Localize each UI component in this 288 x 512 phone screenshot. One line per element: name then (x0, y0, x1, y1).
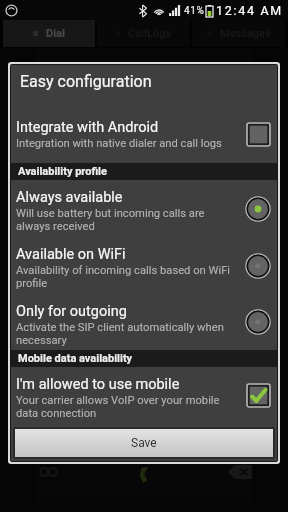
staticText: I'm allowed to use mobile (16, 376, 180, 393)
button[interactable]: 7 (0, 272, 96, 349)
staticText: Will use battery but incoming calls are … (16, 207, 241, 233)
button[interactable]: 5 (96, 195, 192, 272)
staticText: 2 (128, 143, 142, 171)
other: Not selected (245, 309, 271, 335)
button[interactable]: Backspace (192, 464, 288, 498)
button[interactable]: Only for outgoing (11, 294, 277, 350)
staticText: Mobile data availability (18, 352, 133, 365)
button[interactable]: 9 (192, 272, 288, 349)
other: Checked (246, 383, 271, 408)
staticText: PQRS (46, 312, 67, 321)
button[interactable]: * (0, 349, 96, 426)
staticText: ABC (145, 158, 161, 167)
other: Selected (245, 196, 271, 222)
staticText: 3 (224, 143, 238, 171)
staticText: 4 (33, 220, 47, 248)
staticText: Availability of incoming calls based on … (16, 264, 241, 290)
staticText: DEF (241, 158, 256, 167)
staticText: Easy configuration (20, 72, 152, 91)
button[interactable]: Call (96, 464, 192, 498)
button[interactable]: 3 (192, 118, 288, 195)
other: Not selected (245, 253, 271, 279)
staticText: 0 (133, 374, 147, 402)
staticText: Only for outgoing (16, 303, 127, 320)
staticText: Save (131, 436, 157, 450)
button[interactable]: Always available (11, 180, 277, 237)
button[interactable]: I'm allowed to use mobile (11, 367, 277, 424)
button[interactable]: 6 (192, 195, 288, 272)
staticText: Integration with native dialer and call … (16, 137, 222, 150)
staticText: 1 (41, 143, 55, 171)
staticText: Dial (46, 27, 65, 40)
staticText: 41% (184, 5, 205, 17)
button[interactable]: 0 (96, 349, 192, 426)
staticText: CallLogs (128, 27, 172, 40)
button[interactable]: Save (15, 429, 273, 457)
button[interactable]: Messages (192, 20, 285, 47)
button[interactable]: Dial (3, 20, 95, 47)
staticText: * (43, 374, 54, 402)
staticText: # (233, 374, 248, 402)
staticText: 7 (29, 297, 43, 325)
staticText: 8 (128, 297, 142, 325)
staticText: WXYZ (238, 312, 260, 321)
button[interactable]: 1 (0, 118, 96, 195)
staticText: Your carrier allows VoIP over your mobil… (16, 394, 242, 420)
button[interactable]: 8 (96, 272, 192, 349)
staticText: Availability profile (18, 165, 107, 178)
button[interactable]: Integrate with Android (11, 106, 277, 163)
staticText: Activate the SIP client automatically wh… (16, 321, 241, 347)
staticText: Integrate with Android (16, 119, 159, 136)
button[interactable]: 2 (96, 118, 192, 195)
button[interactable]: 4 (0, 195, 96, 272)
button[interactable]: Available on WiFi (11, 237, 277, 294)
staticText: Available on WiFi (16, 246, 126, 263)
other: Unchecked (246, 122, 271, 147)
staticText: Messages (220, 27, 271, 40)
staticText: Always available (16, 189, 123, 206)
button[interactable]: # (192, 349, 288, 426)
staticText: 12:44 AM (216, 3, 283, 18)
